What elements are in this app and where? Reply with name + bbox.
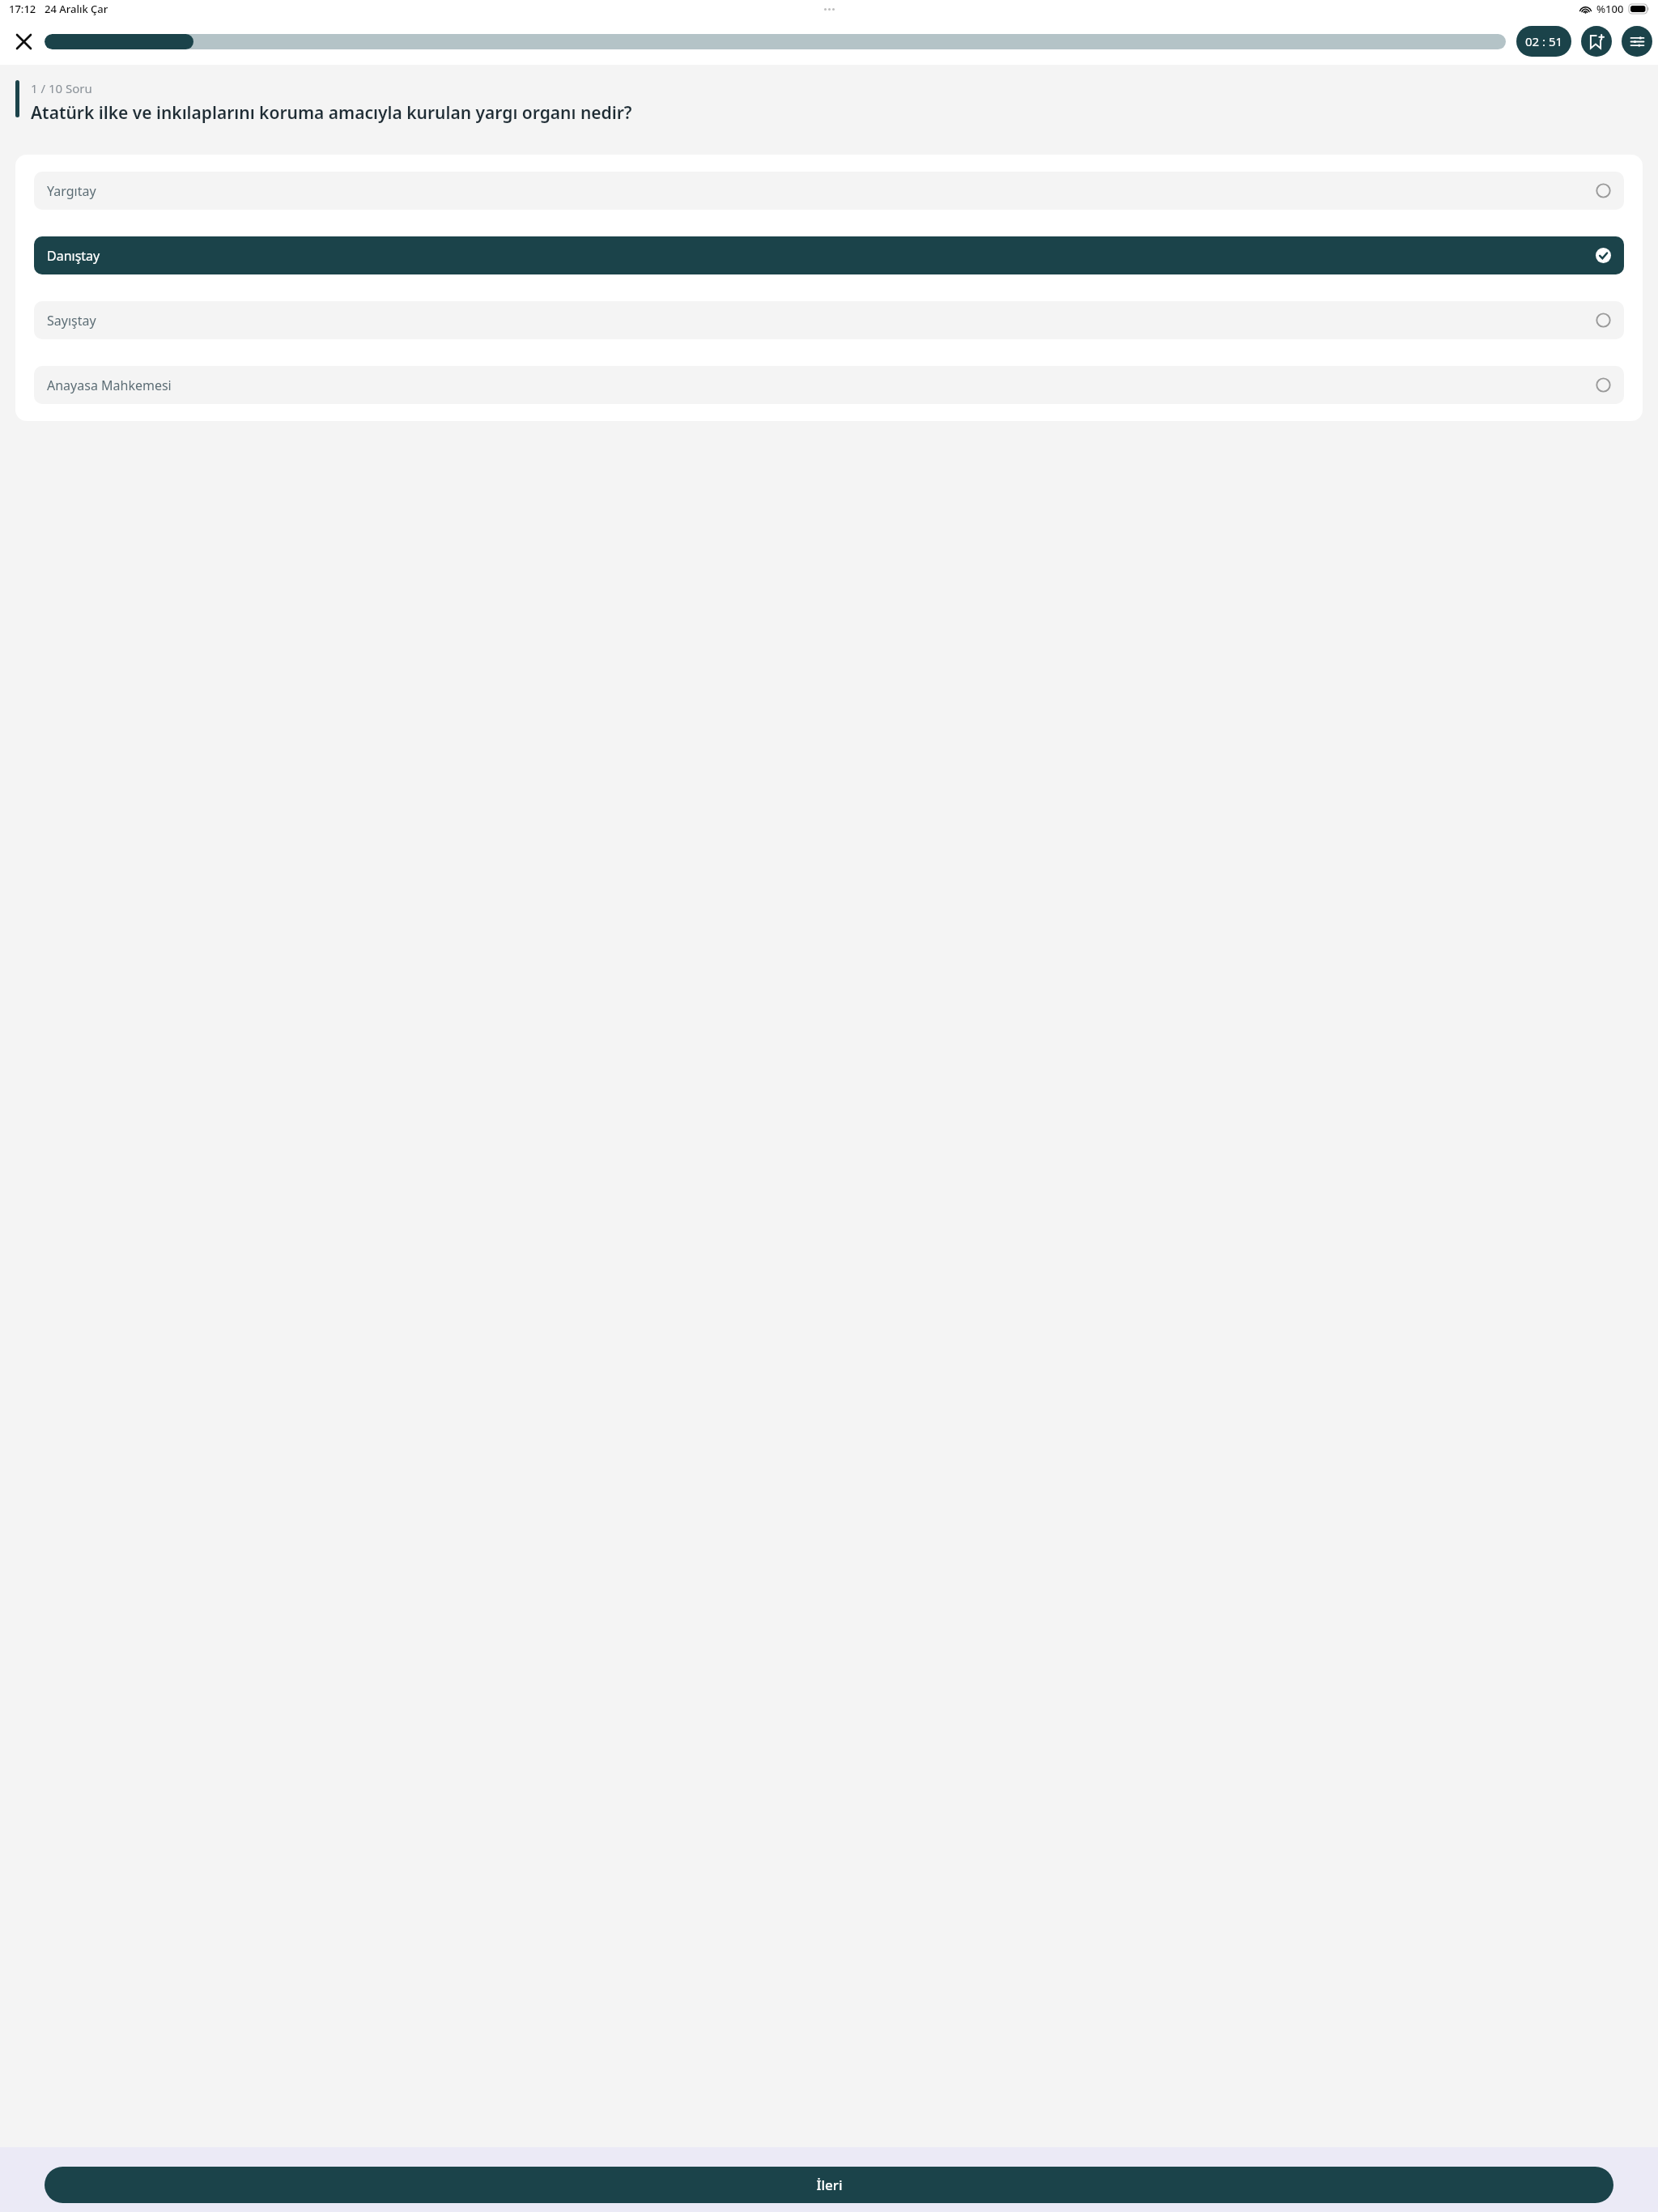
button[interactable]: Ayarlar — [1622, 26, 1652, 57]
staticText: %100 — [1596, 2, 1624, 16]
button[interactable]: İleri — [45, 2167, 1613, 2203]
button[interactable]: Danıştay — [34, 236, 1624, 274]
button[interactable]: Anayasa Mahkemesi — [34, 366, 1624, 404]
button[interactable]: Kapat — [10, 28, 37, 55]
staticText: İleri — [816, 2176, 843, 2194]
button[interactable]: Soruyu kaydet — [1581, 26, 1612, 57]
button[interactable]: 02 : 51 — [1516, 26, 1571, 57]
staticText: Yargıtay — [47, 182, 1596, 200]
staticText: Anayasa Mahkemesi — [47, 376, 1596, 394]
button[interactable]: Sayıştay — [34, 301, 1624, 339]
staticText: 1 / 10 Soru — [31, 80, 92, 96]
button[interactable]: Yargıtay — [34, 172, 1624, 210]
staticText: Atatürk ilke ve inkılaplarını koruma ama… — [31, 101, 632, 125]
staticText: Danıştay — [47, 247, 1596, 265]
staticText: 24 Aralık Çar — [45, 2, 108, 16]
staticText: 02 : 51 — [1525, 33, 1563, 49]
staticText: Sayıştay — [47, 312, 1596, 330]
staticText: 17:12 — [9, 2, 36, 16]
